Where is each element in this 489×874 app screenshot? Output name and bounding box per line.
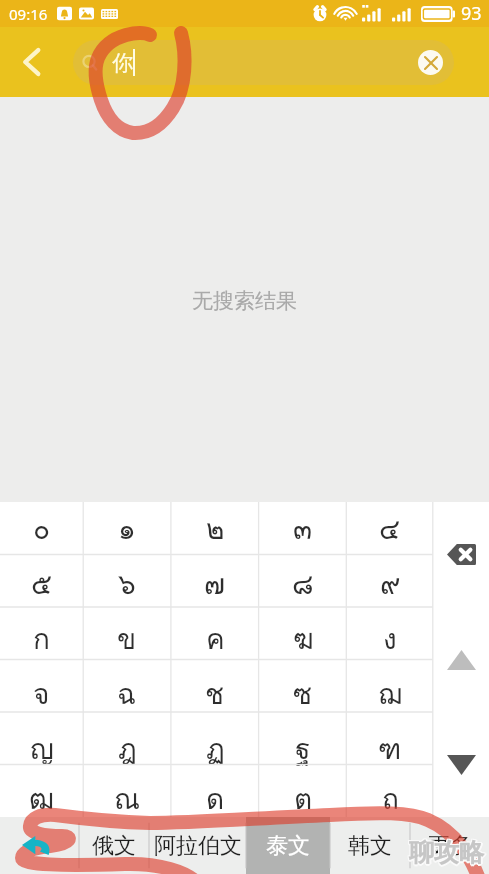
staticText: ๔ [379, 507, 401, 552]
button[interactable]: ณ [83, 777, 171, 817]
button[interactable]: ๙ [347, 557, 433, 612]
staticText: ๖ [118, 562, 136, 607]
button[interactable]: ๔ [347, 502, 433, 557]
button[interactable]: Clear search [418, 50, 443, 75]
staticText: 09:16 [9, 4, 48, 24]
staticText: ๑ [118, 507, 136, 552]
button[interactable]: ซ [259, 667, 347, 722]
staticText: 聊攻略 [409, 839, 484, 870]
button[interactable]: ด [171, 777, 259, 817]
staticText: ก [33, 617, 50, 662]
button[interactable]: Back [10, 40, 54, 84]
staticText: ด [206, 777, 225, 817]
staticText: ฐ [295, 727, 311, 772]
button[interactable]: Page down [433, 712, 489, 817]
staticText: 93 [461, 1, 482, 26]
staticText: ข [117, 617, 137, 662]
button[interactable]: 你 [73, 40, 454, 85]
staticText: 聊攻略 [409, 836, 484, 867]
button[interactable]: ถ [347, 777, 433, 817]
button[interactable]: ๓ [259, 502, 347, 557]
button[interactable]: ๑ [83, 502, 171, 557]
button[interactable]: ๐ [0, 502, 83, 557]
button[interactable]: ฉ [83, 667, 171, 722]
button[interactable]: Backspace [433, 502, 489, 607]
staticText: ฆ [293, 617, 314, 662]
button[interactable]: 更多 [410, 817, 489, 874]
staticText: 泰文 [266, 832, 310, 860]
button[interactable]: ๗ [171, 557, 259, 612]
staticText: 韩文 [348, 832, 392, 860]
staticText: 聊攻略 [408, 838, 483, 869]
button[interactable]: ค [171, 612, 259, 667]
button[interactable]: ฐ [259, 722, 347, 777]
staticText: 聊攻略 [408, 836, 483, 867]
staticText: ๙ [380, 562, 401, 607]
staticText: 无搜索结果 [192, 288, 297, 314]
staticText: 聊攻略 [411, 837, 486, 868]
staticText: ง [383, 617, 397, 662]
staticText: 聊攻略 [408, 837, 483, 868]
staticText: จ [33, 672, 50, 717]
button[interactable]: ฒ [0, 777, 83, 817]
staticText: 你 [112, 50, 133, 76]
button[interactable]: Back [0, 817, 79, 874]
button[interactable]: ข [83, 612, 171, 667]
button[interactable]: จ [0, 667, 83, 722]
staticText: ๒ [206, 507, 225, 552]
staticText: ๘ [292, 562, 314, 607]
button[interactable]: 韩文 [330, 817, 410, 874]
button[interactable]: ฎ [83, 722, 171, 777]
button[interactable]: ฌ [347, 667, 433, 722]
staticText: ฏ [206, 727, 225, 772]
staticText: ซ [293, 672, 313, 717]
button[interactable]: ๕ [0, 557, 83, 612]
button[interactable]: ๒ [171, 502, 259, 557]
button[interactable]: ก [0, 612, 83, 667]
staticText: 阿拉伯文 [154, 832, 242, 860]
staticText: ๕ [31, 562, 53, 607]
button[interactable]: ฆ [259, 612, 347, 667]
button[interactable]: ฏ [171, 722, 259, 777]
staticText: ต [294, 777, 313, 817]
staticText: ๗ [204, 562, 226, 607]
button[interactable]: ญ [0, 722, 83, 777]
staticText: 聊攻略 [410, 836, 485, 867]
staticText: ๐ [33, 507, 51, 552]
staticText: ถ [382, 777, 399, 817]
staticText: ๓ [293, 507, 313, 552]
staticText: ฒ [29, 777, 55, 817]
button[interactable]: 阿拉伯文 [149, 817, 246, 874]
staticText: 更多 [428, 832, 472, 860]
staticText: ฑ [378, 727, 402, 772]
staticText: ค [206, 617, 225, 662]
button[interactable]: ๘ [259, 557, 347, 612]
button[interactable]: ต [259, 777, 347, 817]
button[interactable]: 俄文 [79, 817, 149, 874]
staticText: 俄文 [92, 832, 136, 860]
staticText: ฌ [378, 672, 402, 717]
staticText: 聊攻略 [410, 838, 485, 869]
staticText: 聊攻略 [409, 837, 484, 868]
staticText: ฎ [118, 727, 137, 772]
button[interactable]: Page up [433, 607, 489, 712]
button[interactable]: ๖ [83, 557, 171, 612]
staticText: ช [205, 672, 225, 717]
button[interactable]: 泰文 [246, 817, 330, 874]
button[interactable]: ง [347, 612, 433, 667]
button[interactable]: ช [171, 667, 259, 722]
staticText: ณ [114, 777, 140, 817]
staticText: ฉ [117, 672, 137, 717]
button[interactable]: ฑ [347, 722, 433, 777]
staticText: ญ [30, 727, 54, 772]
